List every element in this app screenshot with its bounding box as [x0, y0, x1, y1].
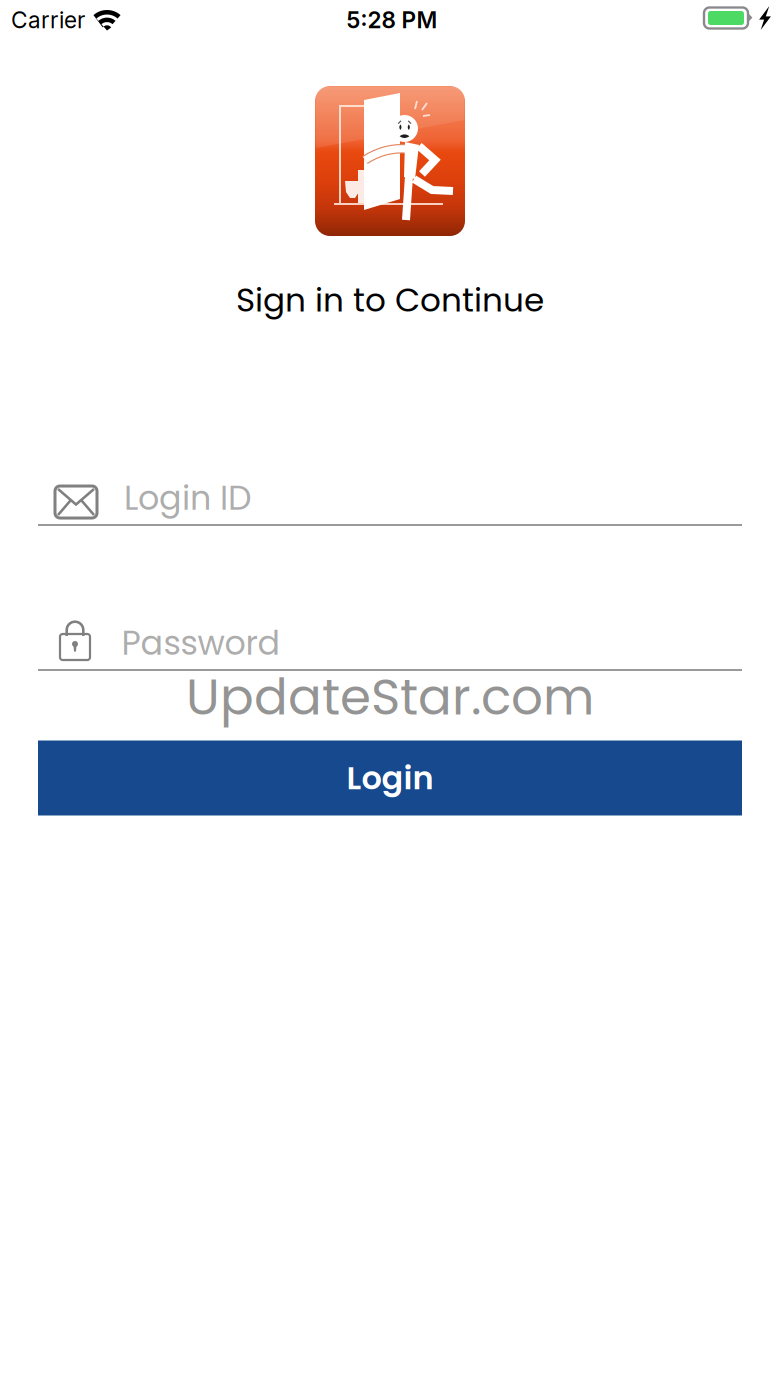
staticText: UpdateStar.com	[186, 662, 594, 732]
button[interactable]: Login	[38, 740, 742, 815]
staticText: Login	[346, 756, 433, 800]
button[interactable]: Password	[38, 614, 742, 672]
staticText: 5:28 PM	[346, 6, 437, 34]
staticText: Password	[121, 620, 280, 666]
staticText: Sign in to Continue	[236, 277, 544, 323]
button[interactable]: Login ID	[38, 469, 742, 527]
staticText: Carrier	[11, 6, 85, 34]
staticText: Login ID	[124, 475, 252, 521]
